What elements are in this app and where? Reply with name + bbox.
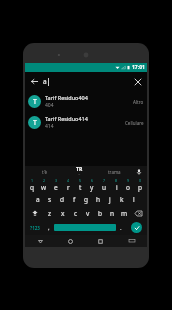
button[interactable]: k: [116, 192, 128, 206]
button[interactable]: g: [80, 192, 92, 206]
button[interactable]: 7: [98, 177, 110, 192]
staticText: a: [43, 77, 47, 86]
button[interactable]: ,: [44, 221, 54, 234]
button[interactable]: Voice input: [132, 166, 146, 177]
button[interactable]: 5: [74, 177, 86, 192]
button[interactable]: ?123: [26, 221, 44, 234]
button[interactable]: TR: [62, 166, 97, 177]
staticText: Cellulare: [125, 120, 144, 126]
staticText: g: [84, 195, 88, 204]
button[interactable]: Clear search: [131, 75, 144, 88]
staticText: TR: [76, 166, 83, 173]
button[interactable]: b: [94, 206, 106, 220]
staticText: p: [138, 183, 142, 192]
staticText: Tarif Residuo414: [45, 115, 88, 122]
staticText: n: [110, 209, 115, 218]
button[interactable]: Back: [28, 75, 41, 88]
staticText: v: [86, 209, 90, 218]
button[interactable]: n: [106, 206, 118, 220]
button[interactable]: a: [32, 192, 44, 206]
staticText: 1: [31, 178, 34, 183]
button[interactable]: trama: [97, 166, 132, 177]
button[interactable]: Hide keyboard: [116, 235, 147, 247]
staticText: x: [61, 209, 65, 218]
staticText: 414: [45, 123, 54, 130]
button[interactable]: 1: [26, 177, 38, 192]
staticText: q: [30, 183, 34, 192]
button[interactable]: 3: [50, 177, 62, 192]
button[interactable]: h: [92, 192, 104, 206]
staticText: a: [36, 195, 40, 204]
button[interactable]: 8: [110, 177, 122, 192]
staticText: T: [33, 97, 37, 107]
staticText: t'è: [42, 169, 47, 175]
button[interactable]: .: [116, 221, 126, 234]
staticText: c: [74, 209, 78, 218]
staticText: Altro: [133, 99, 144, 105]
staticText: 2: [43, 178, 46, 183]
button[interactable]: Recent apps: [85, 235, 116, 247]
button[interactable]: m: [118, 206, 130, 220]
button[interactable]: d: [56, 192, 68, 206]
staticText: k: [120, 195, 124, 204]
button[interactable]: t'è: [26, 166, 62, 177]
button[interactable]: Home: [55, 235, 85, 247]
staticText: b: [98, 209, 102, 218]
button[interactable]: c: [69, 206, 82, 220]
staticText: Tarif Residuo404: [45, 94, 88, 101]
button[interactable]: l: [128, 192, 140, 206]
staticText: trama: [108, 169, 121, 175]
button[interactable]: s: [44, 192, 56, 206]
button[interactable]: 4: [62, 177, 74, 192]
staticText: 17:01: [132, 64, 145, 71]
staticText: u: [102, 183, 107, 192]
staticText: 0: [139, 178, 142, 183]
button[interactable]: 0: [134, 177, 146, 192]
button[interactable]: T: [25, 112, 147, 133]
staticText: s: [48, 195, 52, 204]
staticText: t: [79, 183, 82, 192]
staticText: .: [120, 224, 122, 232]
button[interactable]: Done: [131, 222, 142, 233]
staticText: 5: [79, 178, 82, 183]
button[interactable]: 6: [86, 177, 98, 192]
staticText: 404: [45, 102, 54, 109]
button[interactable]: v: [82, 206, 94, 220]
staticText: f: [73, 195, 76, 204]
button[interactable]: T: [25, 91, 147, 112]
staticText: m: [121, 209, 128, 218]
staticText: 8: [115, 178, 118, 183]
staticText: d: [60, 195, 64, 204]
staticText: 7: [103, 178, 106, 183]
button[interactable]: j: [104, 192, 116, 206]
button[interactable]: Shift: [26, 206, 43, 220]
staticText: ···: [78, 173, 81, 177]
button[interactable]: f: [68, 192, 80, 206]
staticText: 3: [55, 178, 58, 183]
button[interactable]: z: [43, 206, 56, 220]
button[interactable]: Space: [54, 224, 116, 231]
staticText: y: [90, 183, 94, 192]
button[interactable]: 2: [38, 177, 50, 192]
staticText: i: [116, 183, 118, 192]
staticText: z: [48, 209, 52, 218]
staticText: j: [109, 195, 111, 204]
button[interactable]: 9: [122, 177, 134, 192]
staticText: ,: [48, 224, 50, 232]
staticText: h: [96, 195, 101, 204]
staticText: 4: [67, 178, 70, 183]
staticText: r: [67, 183, 70, 192]
staticText: 9: [127, 178, 130, 183]
staticText: T: [33, 118, 37, 128]
button[interactable]: x: [56, 206, 69, 220]
staticText: ?123: [30, 225, 40, 231]
staticText: 6: [91, 178, 94, 183]
staticText: w: [41, 183, 47, 192]
staticText: l: [133, 195, 135, 204]
staticText: e: [54, 183, 58, 192]
button[interactable]: Backspace: [130, 206, 146, 220]
button[interactable]: Back: [25, 235, 55, 247]
staticText: o: [126, 183, 130, 192]
